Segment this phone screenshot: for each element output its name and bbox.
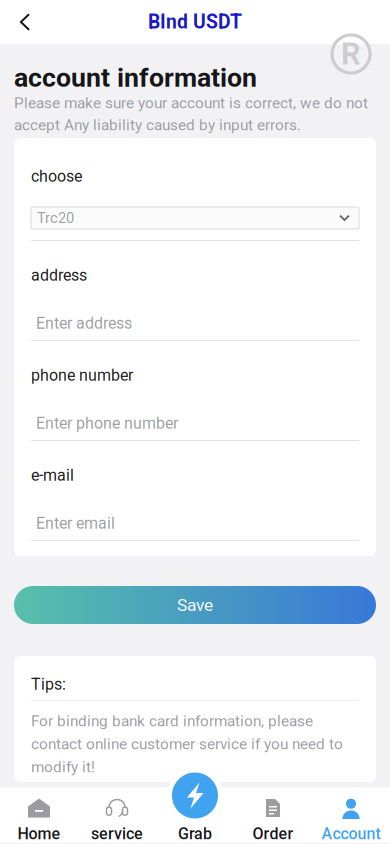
button[interactable]: Grab bbox=[166, 766, 224, 824]
staticText: Save bbox=[177, 595, 213, 615]
staticText: accept Any liability caused by input err… bbox=[14, 116, 301, 134]
staticText: choose bbox=[31, 167, 82, 186]
button[interactable]: Save bbox=[14, 586, 376, 624]
staticText: Trc20 bbox=[37, 209, 74, 227]
staticText: Enter email bbox=[36, 514, 115, 533]
staticText: contact online customer service if you n… bbox=[31, 735, 343, 753]
staticText: Enter phone number bbox=[36, 414, 178, 433]
staticText: phone number bbox=[31, 366, 133, 385]
staticText: address bbox=[31, 266, 87, 285]
staticText: Please make sure your account is correct… bbox=[14, 94, 368, 112]
button[interactable]: Back bbox=[4, 0, 46, 44]
staticText: Grab bbox=[178, 824, 212, 843]
button[interactable]: Order bbox=[234, 787, 312, 842]
staticText: For binding bank card information, pleas… bbox=[31, 712, 313, 730]
staticText: service bbox=[91, 824, 143, 843]
staticText: Order bbox=[252, 824, 293, 843]
staticText: Account bbox=[321, 824, 380, 843]
staticText: BInd USDT bbox=[148, 11, 242, 33]
staticText: e-mail bbox=[31, 466, 74, 485]
button[interactable]: Home bbox=[0, 787, 78, 842]
button[interactable]: Grab bbox=[156, 787, 234, 842]
button[interactable]: service bbox=[78, 787, 156, 842]
button[interactable]: Account bbox=[312, 787, 390, 842]
staticText: Home bbox=[17, 824, 60, 843]
staticText: Enter address bbox=[36, 314, 132, 333]
staticText: account information bbox=[14, 62, 257, 93]
staticText: R bbox=[341, 36, 361, 72]
staticText: modify it! bbox=[31, 758, 95, 776]
staticText: Tips: bbox=[31, 675, 66, 694]
